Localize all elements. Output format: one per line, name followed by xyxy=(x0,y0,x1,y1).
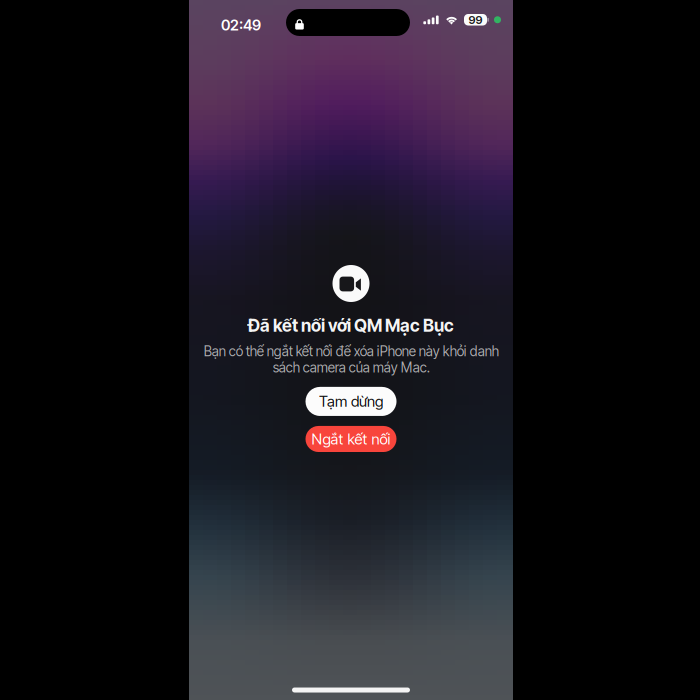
button[interactable]: Tạm dừng xyxy=(305,387,396,416)
staticText: Ngắt kết nối xyxy=(311,430,390,448)
staticText: Bạn có thể ngắt kết nối để xóa iPhone nà… xyxy=(203,343,498,376)
button[interactable]: Ngắt kết nối xyxy=(305,426,396,452)
staticText: Đã kết nối với QM Mạc Bục xyxy=(248,315,454,336)
staticText: Tạm dừng xyxy=(319,392,383,410)
staticText: 02:49 xyxy=(221,16,261,34)
staticText: 99 xyxy=(468,13,482,27)
